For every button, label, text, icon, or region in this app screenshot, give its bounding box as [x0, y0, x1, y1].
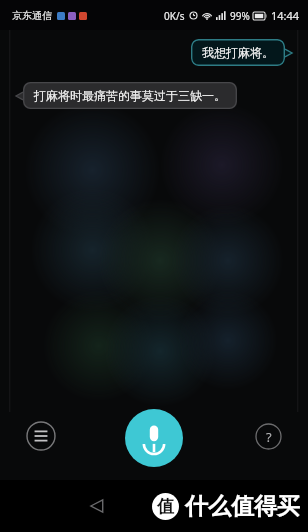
staticText: 99%: [230, 9, 250, 23]
staticText: 什么值得买: [185, 492, 300, 521]
button[interactable]: Menu: [26, 421, 56, 451]
staticText: 0K/s: [164, 9, 185, 23]
staticText: 值: [157, 496, 174, 517]
button[interactable]: Back: [86, 495, 108, 517]
staticText: 打麻将时最痛苦的事莫过于三缺一。: [34, 88, 226, 103]
staticText: ?: [266, 428, 272, 446]
staticText: 我想打麻将。: [202, 45, 274, 60]
button[interactable]: 打麻将时最痛苦的事莫过于三缺一。: [23, 82, 237, 109]
button[interactable]: 我想打麻将。: [191, 39, 285, 66]
staticText: 京东通信: [12, 9, 52, 22]
button[interactable]: Help: [255, 423, 282, 450]
button[interactable]: Voice input: [125, 409, 183, 467]
staticText: 14:44: [271, 8, 300, 23]
